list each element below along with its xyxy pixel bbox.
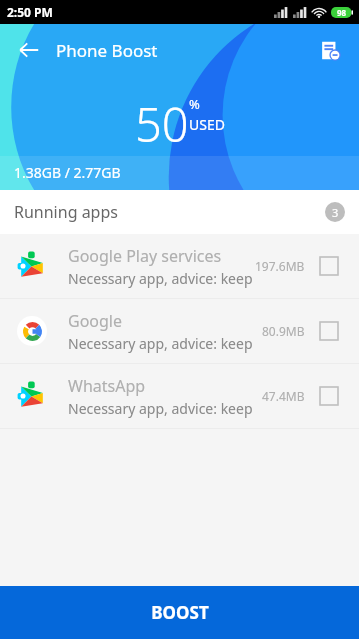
staticText: Necessary app, advice: keep	[68, 269, 253, 288]
staticText: 1.38GB / 2.77GB	[14, 163, 121, 182]
button[interactable]: BOOST	[0, 586, 359, 639]
staticText: Running apps	[14, 201, 118, 223]
staticText: 197.6MB	[255, 258, 305, 274]
staticText: Phone Boost	[56, 39, 158, 62]
button[interactable]: Google	[0, 299, 359, 363]
staticText: Google	[68, 310, 123, 332]
button[interactable]: Google Play services	[0, 234, 359, 298]
staticText: 3	[332, 205, 339, 220]
staticText: 98	[337, 7, 347, 18]
staticText: %	[189, 95, 200, 113]
staticText: WhatsApp	[68, 375, 146, 397]
button[interactable]: Select Google Play services	[315, 252, 343, 280]
button[interactable]: Back	[6, 27, 52, 73]
button[interactable]: WhatsApp	[0, 364, 359, 428]
staticText: 50	[135, 92, 189, 156]
staticText: USED	[189, 115, 225, 134]
staticText: 47.4MB	[262, 388, 305, 404]
staticText: BOOST	[151, 601, 209, 624]
staticText: 80.9MB	[262, 323, 305, 339]
button[interactable]: Select Google	[315, 317, 343, 345]
button[interactable]: Select WhatsApp	[315, 382, 343, 410]
staticText: Google Play services	[68, 245, 222, 267]
staticText: Necessary app, advice: keep	[68, 399, 253, 418]
staticText: 2:50 PM	[7, 4, 53, 20]
button[interactable]: Ignore list	[309, 29, 351, 71]
staticText: Necessary app, advice: keep	[68, 334, 253, 353]
